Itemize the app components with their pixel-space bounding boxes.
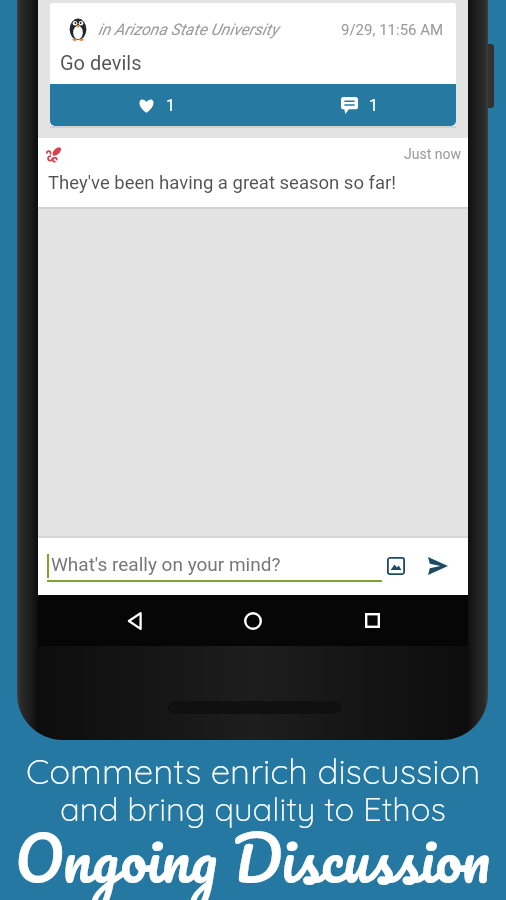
staticText: 9/29, 11:56 AM <box>341 21 444 39</box>
staticText: 1 <box>166 96 175 115</box>
staticText: 1 <box>369 96 378 115</box>
staticText: and bring quality to Ethos <box>60 788 446 829</box>
staticText: What's really on your mind? <box>51 553 281 575</box>
staticText: Comments enrich discussion <box>26 749 481 793</box>
staticText: Just now <box>404 146 461 162</box>
staticText: They've been having a great season so fa… <box>48 172 397 194</box>
staticText: Ongoing Discussion <box>15 806 491 900</box>
staticText: in Arizona State University <box>98 20 279 39</box>
staticText: Go devils <box>60 51 142 74</box>
